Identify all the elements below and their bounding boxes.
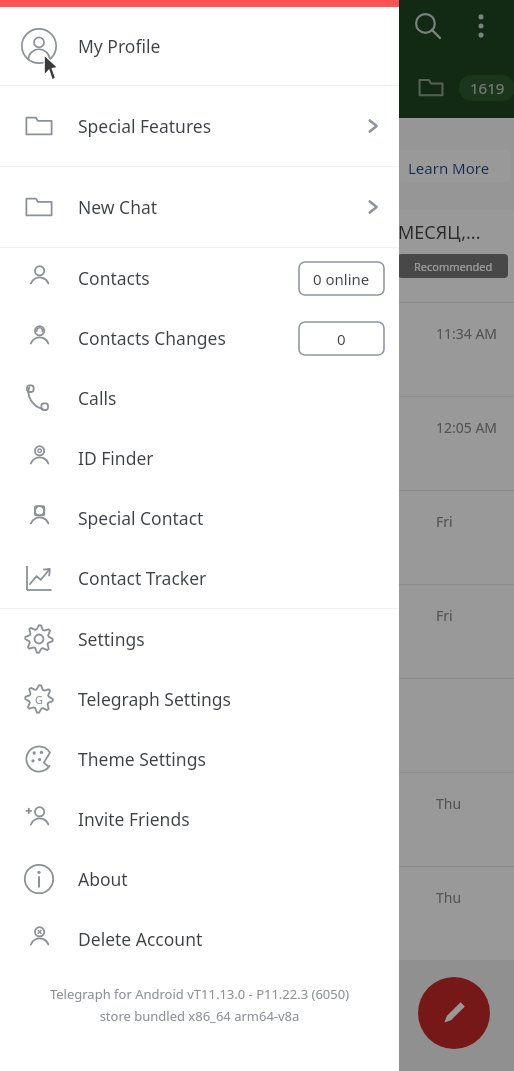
button[interactable]: Calls bbox=[0, 368, 399, 428]
button[interactable]: New Chat bbox=[0, 167, 399, 247]
staticText: Thu bbox=[436, 794, 462, 813]
staticText: Invite Friends bbox=[78, 807, 399, 831]
staticText: Recommended bbox=[414, 259, 493, 274]
staticText: Thu bbox=[436, 888, 462, 907]
staticText: About bbox=[78, 867, 399, 891]
staticText: Learn More bbox=[408, 158, 490, 178]
button[interactable]: Special Features bbox=[0, 86, 399, 166]
button[interactable]: Theme Settings bbox=[0, 729, 399, 789]
staticText: 1619 bbox=[470, 78, 505, 98]
staticText: 11:34 AM bbox=[436, 324, 498, 343]
staticText: Settings bbox=[78, 627, 399, 651]
staticText: ID Finder bbox=[78, 446, 399, 470]
button[interactable]: G bbox=[0, 669, 399, 729]
staticText: МЕСЯЦ,... bbox=[398, 220, 481, 245]
button[interactable]: ID Finder bbox=[0, 428, 399, 488]
staticText: 0 bbox=[337, 329, 346, 349]
staticText: Contacts bbox=[78, 266, 299, 290]
button[interactable]: Contact Tracker bbox=[0, 548, 399, 608]
button[interactable]: Contacts Changes bbox=[0, 308, 399, 368]
staticText: 12:05 AM bbox=[436, 418, 498, 437]
staticText: Calls bbox=[78, 386, 399, 410]
staticText: Delete Account bbox=[78, 927, 399, 951]
staticText: Fri bbox=[436, 606, 453, 625]
staticText: Special Features bbox=[78, 114, 347, 138]
staticText: Contact Tracker bbox=[78, 566, 399, 590]
button[interactable]: Special Contact bbox=[0, 488, 399, 548]
staticText: New Chat bbox=[78, 195, 347, 219]
button[interactable]: Invite Friends bbox=[0, 789, 399, 849]
staticText: 0 online bbox=[313, 269, 370, 289]
button[interactable]: My Profile bbox=[0, 7, 399, 85]
staticText: G bbox=[35, 692, 44, 707]
button[interactable]: Contacts bbox=[0, 248, 399, 308]
staticText: Telegraph for Android vT11.13.0 - P11.22… bbox=[8, 985, 391, 1025]
button[interactable]: Delete Account bbox=[0, 909, 399, 969]
staticText: Fri bbox=[436, 512, 453, 531]
staticText: Special Contact bbox=[78, 506, 399, 530]
button[interactable]: Settings bbox=[0, 609, 399, 669]
staticText: My Profile bbox=[78, 34, 399, 58]
staticText: Telegraph Settings bbox=[78, 687, 399, 711]
staticText: Theme Settings bbox=[78, 747, 399, 771]
button[interactable]: About bbox=[0, 849, 399, 909]
staticText: Contacts Changes bbox=[78, 326, 299, 350]
